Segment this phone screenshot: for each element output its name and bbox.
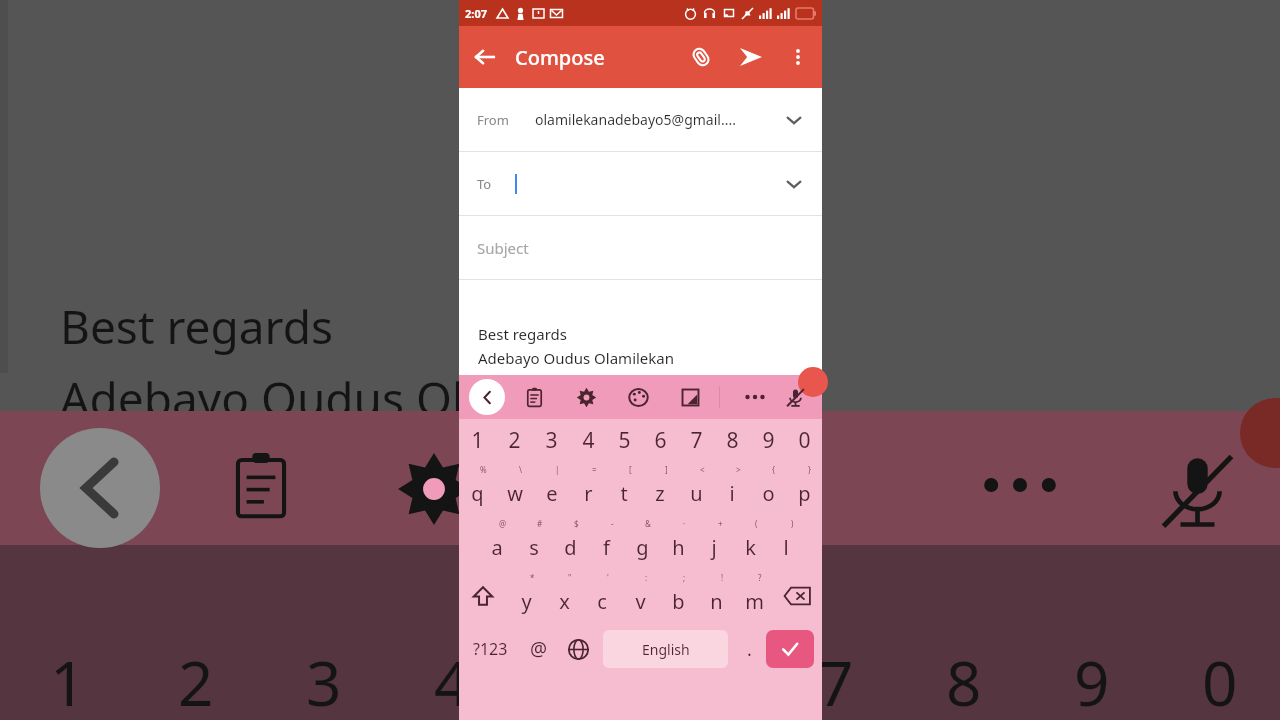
- button[interactable]: Resize keyboard: [675, 382, 705, 412]
- staticText: Adebayo Oudus Olamilekan: [60, 367, 662, 430]
- staticText: 3: [545, 426, 558, 455]
- button[interactable]: Attach file: [676, 32, 726, 82]
- button[interactable]: :: [621, 569, 659, 623]
- button[interactable]: 0: [786, 419, 822, 461]
- staticText: 8: [726, 426, 739, 455]
- staticText: a: [491, 534, 503, 561]
- staticText: 2: [508, 426, 521, 455]
- staticText: 4: [582, 426, 595, 455]
- button[interactable]: &: [624, 515, 660, 569]
- button[interactable]: Enter: [766, 630, 814, 668]
- button[interactable]: ;: [659, 569, 697, 623]
- button[interactable]: <: [678, 461, 714, 515]
- staticText: 0: [798, 426, 811, 455]
- staticText: ?123: [473, 638, 508, 660]
- staticText: #: [537, 518, 543, 529]
- staticText: p: [798, 480, 811, 507]
- button[interactable]: .: [732, 623, 766, 675]
- button[interactable]: >: [714, 461, 750, 515]
- button[interactable]: Close keyboard toolbar: [469, 379, 505, 415]
- staticText: 6: [654, 426, 667, 455]
- staticText: :: [645, 572, 648, 583]
- button[interactable]: ?123: [459, 623, 521, 675]
- button[interactable]: Voice input off: [780, 382, 810, 412]
- button[interactable]: 6: [642, 419, 678, 461]
- button[interactable]: ): [768, 515, 804, 569]
- staticText: z: [655, 480, 665, 507]
- button[interactable]: 4: [570, 419, 606, 461]
- button[interactable]: |: [533, 461, 570, 515]
- button[interactable]: Clipboard: [519, 382, 549, 412]
- staticText: +: [718, 518, 723, 529]
- button[interactable]: +: [696, 515, 732, 569]
- button[interactable]: ]: [642, 461, 678, 515]
- staticText: =: [592, 464, 597, 475]
- button[interactable]: {: [750, 461, 786, 515]
- button[interactable]: ?: [735, 569, 773, 623]
- button[interactable]: 3: [533, 419, 570, 461]
- button[interactable]: Shift: [459, 569, 507, 623]
- staticText: ;: [683, 572, 686, 583]
- staticText: !: [721, 572, 724, 583]
- staticText: r: [584, 480, 593, 507]
- staticText: *: [530, 572, 535, 583]
- button[interactable]: 9: [750, 419, 786, 461]
- button[interactable]: 7: [678, 419, 714, 461]
- button[interactable]: Change language: [557, 623, 599, 675]
- button[interactable]: More: [738, 380, 772, 414]
- staticText: e: [546, 480, 558, 507]
- button[interactable]: Subject: [459, 216, 822, 279]
- staticText: 7: [690, 426, 703, 455]
- button[interactable]: More options: [776, 35, 820, 79]
- button[interactable]: !: [697, 569, 735, 623]
- staticText: }: [808, 464, 812, 475]
- staticText: u: [690, 480, 703, 507]
- button[interactable]: ': [583, 569, 621, 623]
- staticText: 5: [562, 640, 598, 720]
- staticText: ': [607, 572, 609, 583]
- button[interactable]: English: [603, 630, 728, 668]
- button[interactable]: Back: [459, 31, 511, 83]
- staticText: $: [574, 518, 579, 529]
- staticText: Best regards: [60, 295, 333, 358]
- staticText: Adebayo Oudus Olamilekan: [478, 348, 675, 368]
- button[interactable]: \: [496, 461, 533, 515]
- button[interactable]: [: [606, 461, 642, 515]
- staticText: k: [745, 534, 756, 561]
- staticText: |: [555, 464, 560, 475]
- button[interactable]: @: [521, 623, 557, 675]
- button[interactable]: 5: [606, 419, 642, 461]
- button[interactable]: To: [459, 152, 822, 215]
- staticText: o: [762, 480, 775, 507]
- staticText: Best regards: [478, 324, 568, 344]
- staticText: \: [519, 464, 522, 475]
- staticText: 6: [690, 640, 726, 720]
- button[interactable]: ·: [660, 515, 696, 569]
- button[interactable]: (: [732, 515, 768, 569]
- button[interactable]: From: [459, 88, 822, 151]
- staticText: 9: [1074, 640, 1110, 720]
- staticText: ?: [758, 572, 762, 583]
- staticText: y: [521, 588, 532, 615]
- staticText: To: [477, 175, 492, 193]
- button[interactable]: 1: [459, 419, 496, 461]
- button[interactable]: ": [545, 569, 583, 623]
- button[interactable]: *: [507, 569, 545, 623]
- button[interactable]: $: [552, 515, 588, 569]
- button[interactable]: Theme: [623, 382, 653, 412]
- button[interactable]: %: [459, 461, 496, 515]
- button[interactable]: =: [570, 461, 606, 515]
- button[interactable]: 2: [496, 419, 533, 461]
- staticText: 7: [818, 640, 854, 720]
- staticText: f: [603, 534, 610, 561]
- button[interactable]: Send: [726, 32, 776, 82]
- button[interactable]: 8: [714, 419, 750, 461]
- staticText: -: [611, 518, 614, 529]
- button[interactable]: Settings: [571, 382, 601, 412]
- button[interactable]: -: [588, 515, 624, 569]
- button[interactable]: }: [786, 461, 822, 515]
- button[interactable]: @: [478, 515, 515, 569]
- button[interactable]: Backspace: [773, 569, 822, 623]
- button[interactable]: #: [515, 515, 552, 569]
- staticText: 1: [471, 426, 484, 455]
